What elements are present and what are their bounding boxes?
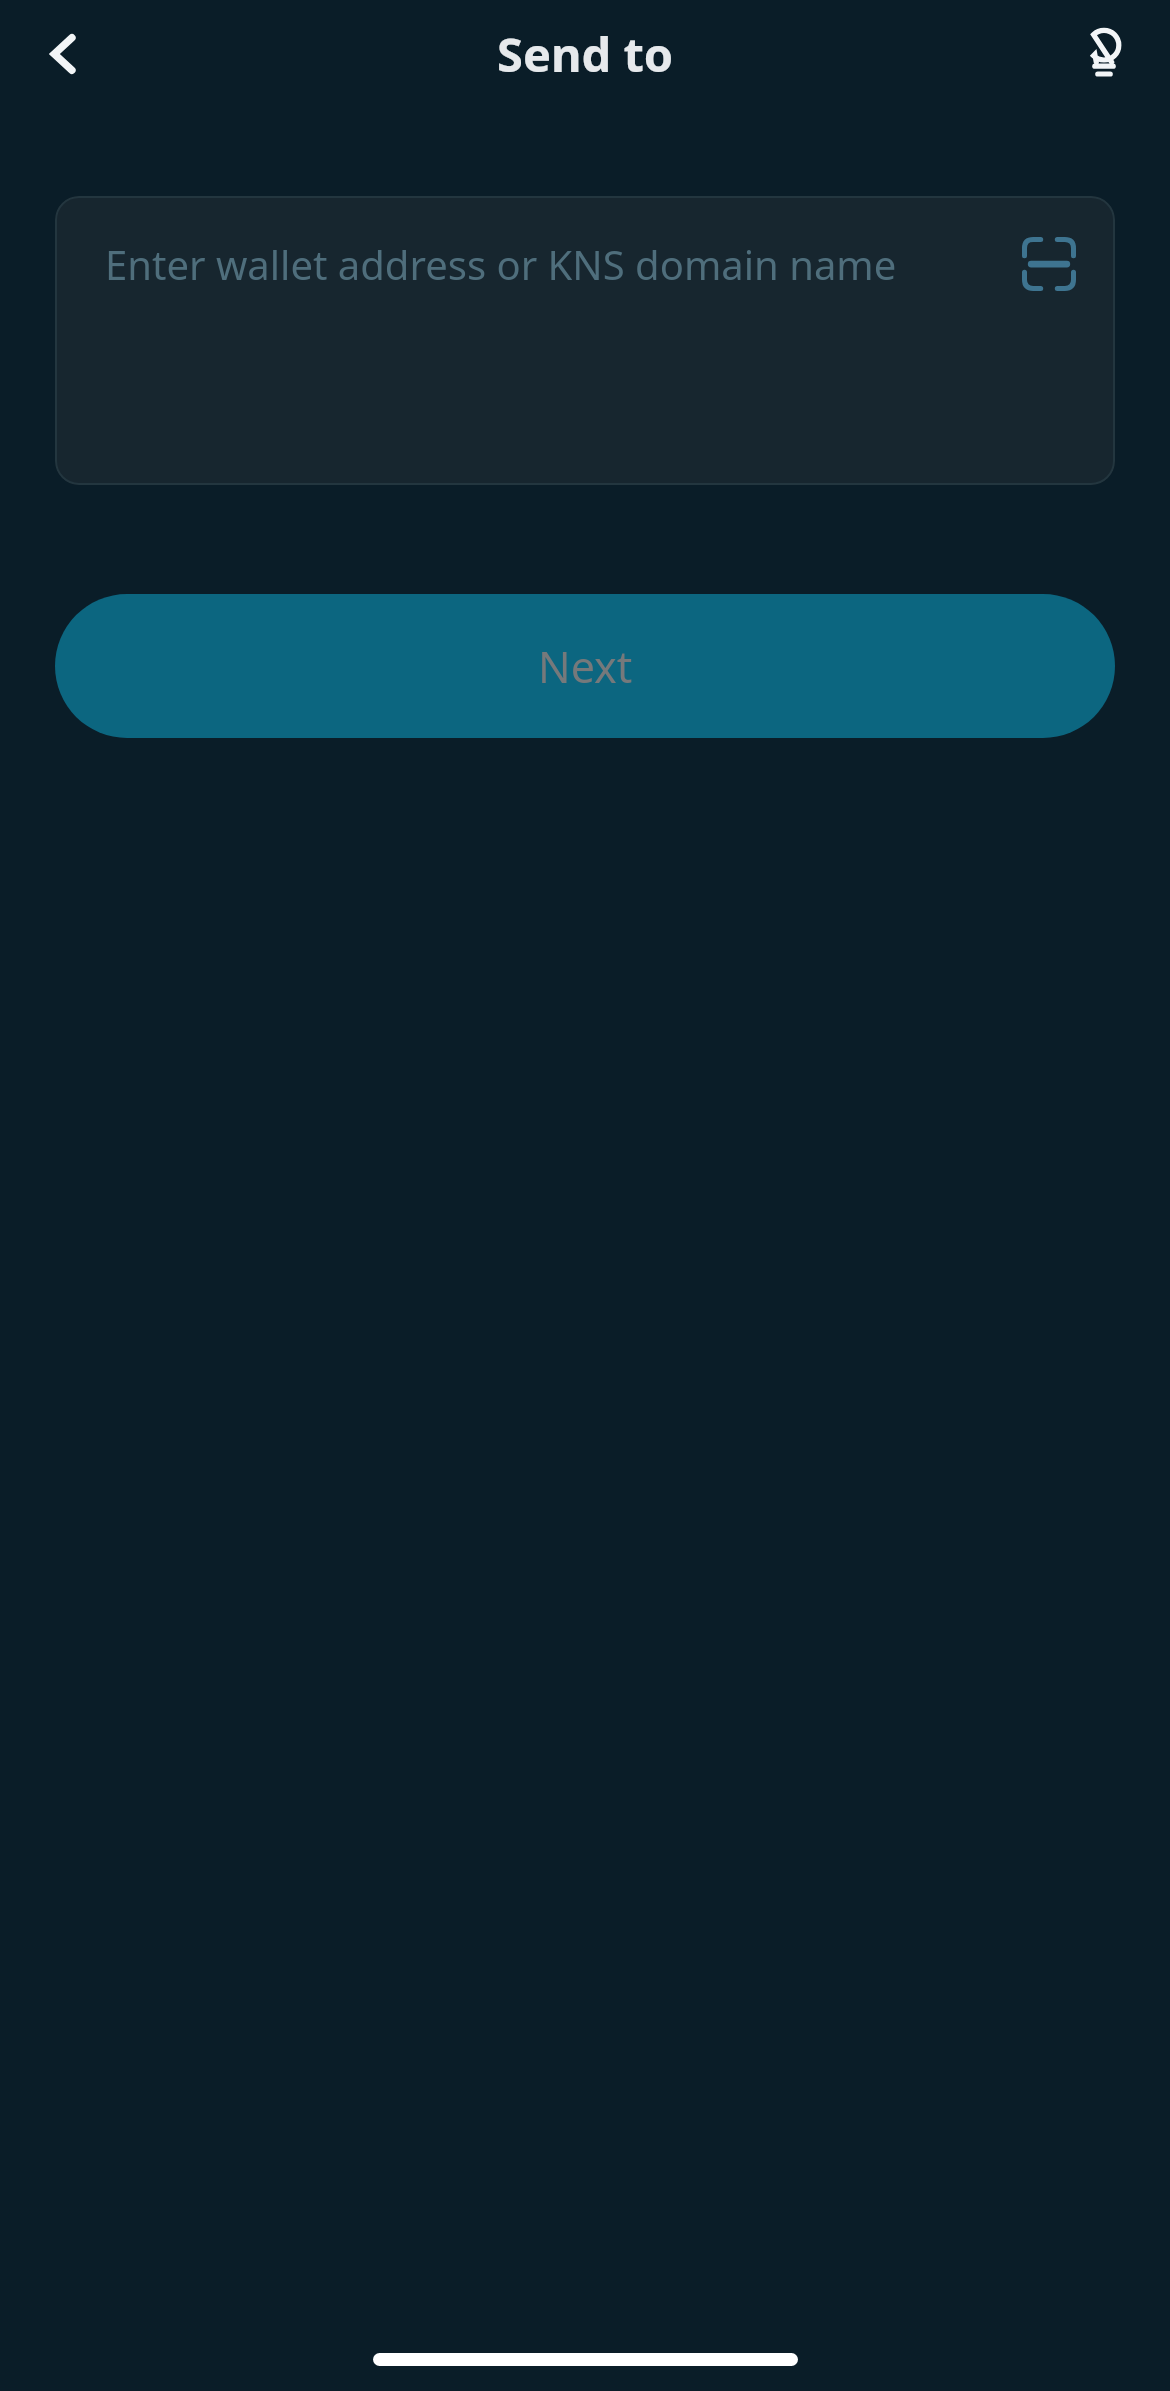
staticText: Next [538, 637, 633, 696]
button[interactable]: Tips [1058, 8, 1150, 100]
button[interactable]: Scan QR code [1019, 234, 1079, 294]
staticText: Send to [497, 22, 674, 86]
button[interactable]: Next [55, 594, 1115, 738]
button[interactable]: Back [18, 8, 110, 100]
staticText: Enter wallet address or KNS domain name [105, 237, 897, 291]
button[interactable]: Enter wallet address or KNS domain name [55, 196, 1115, 485]
